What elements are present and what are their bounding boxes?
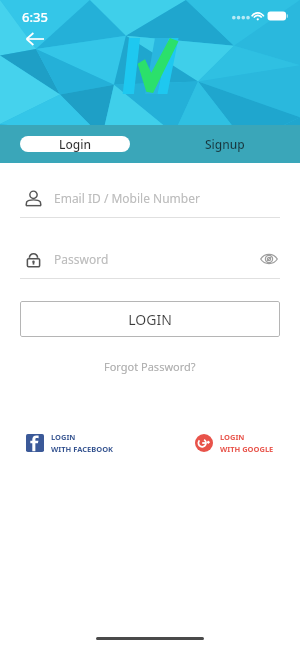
staticText: Email ID / Mobile Number — [54, 190, 280, 206]
staticText: Signup — [205, 136, 245, 152]
button[interactable]: LOGIN — [195, 432, 274, 454]
button[interactable]: Login — [20, 136, 130, 152]
staticText: Forgot Password? — [104, 359, 196, 374]
button[interactable]: Email ID / Mobile Number — [20, 185, 280, 211]
button[interactable]: Signup — [170, 136, 280, 152]
staticText: Login — [59, 136, 91, 152]
button[interactable]: Show password — [258, 248, 280, 270]
button[interactable]: Password — [20, 246, 280, 272]
button[interactable]: Back — [22, 26, 48, 52]
other: Signal, Wi-Fi and battery status — [232, 9, 288, 23]
button[interactable]: LOGIN — [26, 432, 114, 454]
staticText: LOGIN — [220, 432, 245, 442]
staticText: 6:35 — [22, 8, 48, 26]
staticText: Password — [54, 251, 258, 267]
staticText: WITH GOOGLE — [220, 444, 274, 454]
staticText: LOGIN — [51, 432, 76, 442]
staticText: WITH FACEBOOK — [51, 444, 114, 454]
staticText: LOGIN — [128, 310, 172, 329]
button[interactable]: LOGIN — [20, 301, 280, 337]
